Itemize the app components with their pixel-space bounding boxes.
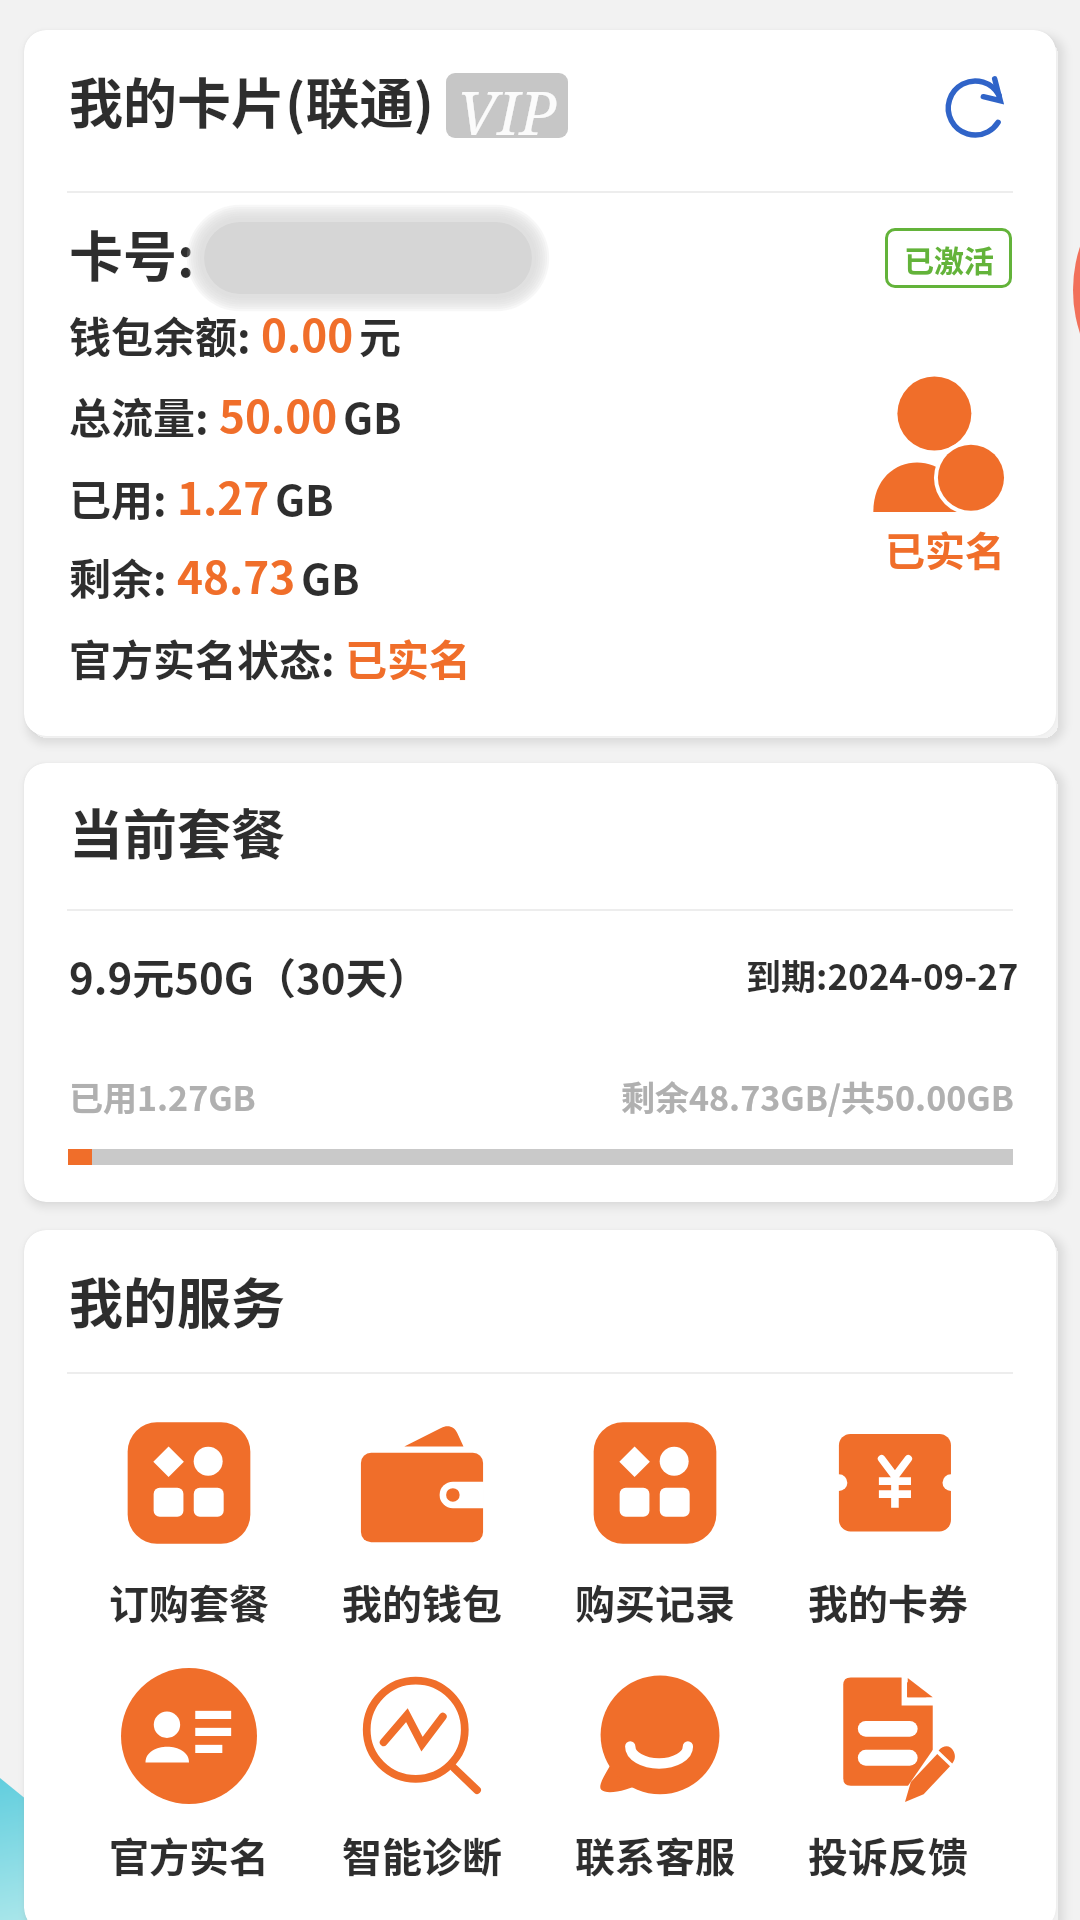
staticText: 我的服务: [69, 1261, 285, 1339]
staticText: 已用1.27GB: [69, 1072, 256, 1121]
staticText: 到期:2024-09-27: [746, 949, 1019, 1000]
button[interactable]: 我的卡券: [772, 1415, 1004, 1635]
staticText: 剩余48.73GB/共50.00GB: [621, 1072, 1014, 1121]
staticText: GB: [275, 467, 334, 528]
staticText: 总流量:: [69, 385, 219, 446]
staticText: 当前套餐: [69, 792, 285, 870]
staticText: 投诉反馈: [808, 1826, 968, 1884]
button[interactable]: 投诉反馈: [772, 1668, 1004, 1888]
button[interactable]: 订购套餐: [73, 1415, 305, 1635]
button[interactable]: 官方实名: [73, 1668, 305, 1888]
button[interactable]: 我的钱包: [306, 1415, 538, 1635]
staticText: 已用:: [69, 467, 177, 528]
staticText: 我的钱包: [342, 1573, 502, 1631]
staticText: 订购套餐: [109, 1573, 269, 1631]
staticText: 购买记录: [575, 1573, 735, 1631]
staticText: 钱包余额:: [69, 304, 261, 365]
staticText: 1.27: [177, 464, 270, 528]
staticText: 已实名: [345, 627, 472, 688]
staticText: 9.9元50G（30天）: [69, 945, 430, 1006]
staticText: 智能诊断: [342, 1826, 502, 1884]
button[interactable]: 已实名: [871, 376, 1007, 512]
button[interactable]: 智能诊断: [306, 1668, 538, 1888]
button[interactable]: 购买记录: [539, 1415, 771, 1635]
button[interactable]: 刷新: [938, 70, 1014, 146]
staticText: GB: [301, 546, 360, 607]
staticText: 官方实名状态:: [69, 627, 345, 688]
button[interactable]: 已激活: [885, 228, 1012, 288]
staticText: 联系客服: [575, 1826, 735, 1884]
staticText: 我的卡券: [808, 1573, 968, 1631]
staticText: 官方实名: [109, 1826, 269, 1884]
staticText: 48.73: [177, 543, 296, 607]
staticText: 0.00: [261, 301, 354, 365]
staticText: VIP: [457, 73, 557, 136]
staticText: 元: [359, 304, 402, 365]
staticText: GB: [343, 385, 402, 446]
staticText: 我的卡片(联通): [69, 61, 434, 139]
staticText: 已激活: [904, 237, 994, 280]
button[interactable]: 联系客服: [539, 1668, 771, 1888]
staticText: 50.00: [219, 382, 338, 446]
staticText: 已实名: [885, 520, 1005, 578]
staticText: 剩余:: [69, 546, 177, 607]
staticText: 卡号:: [69, 214, 195, 292]
